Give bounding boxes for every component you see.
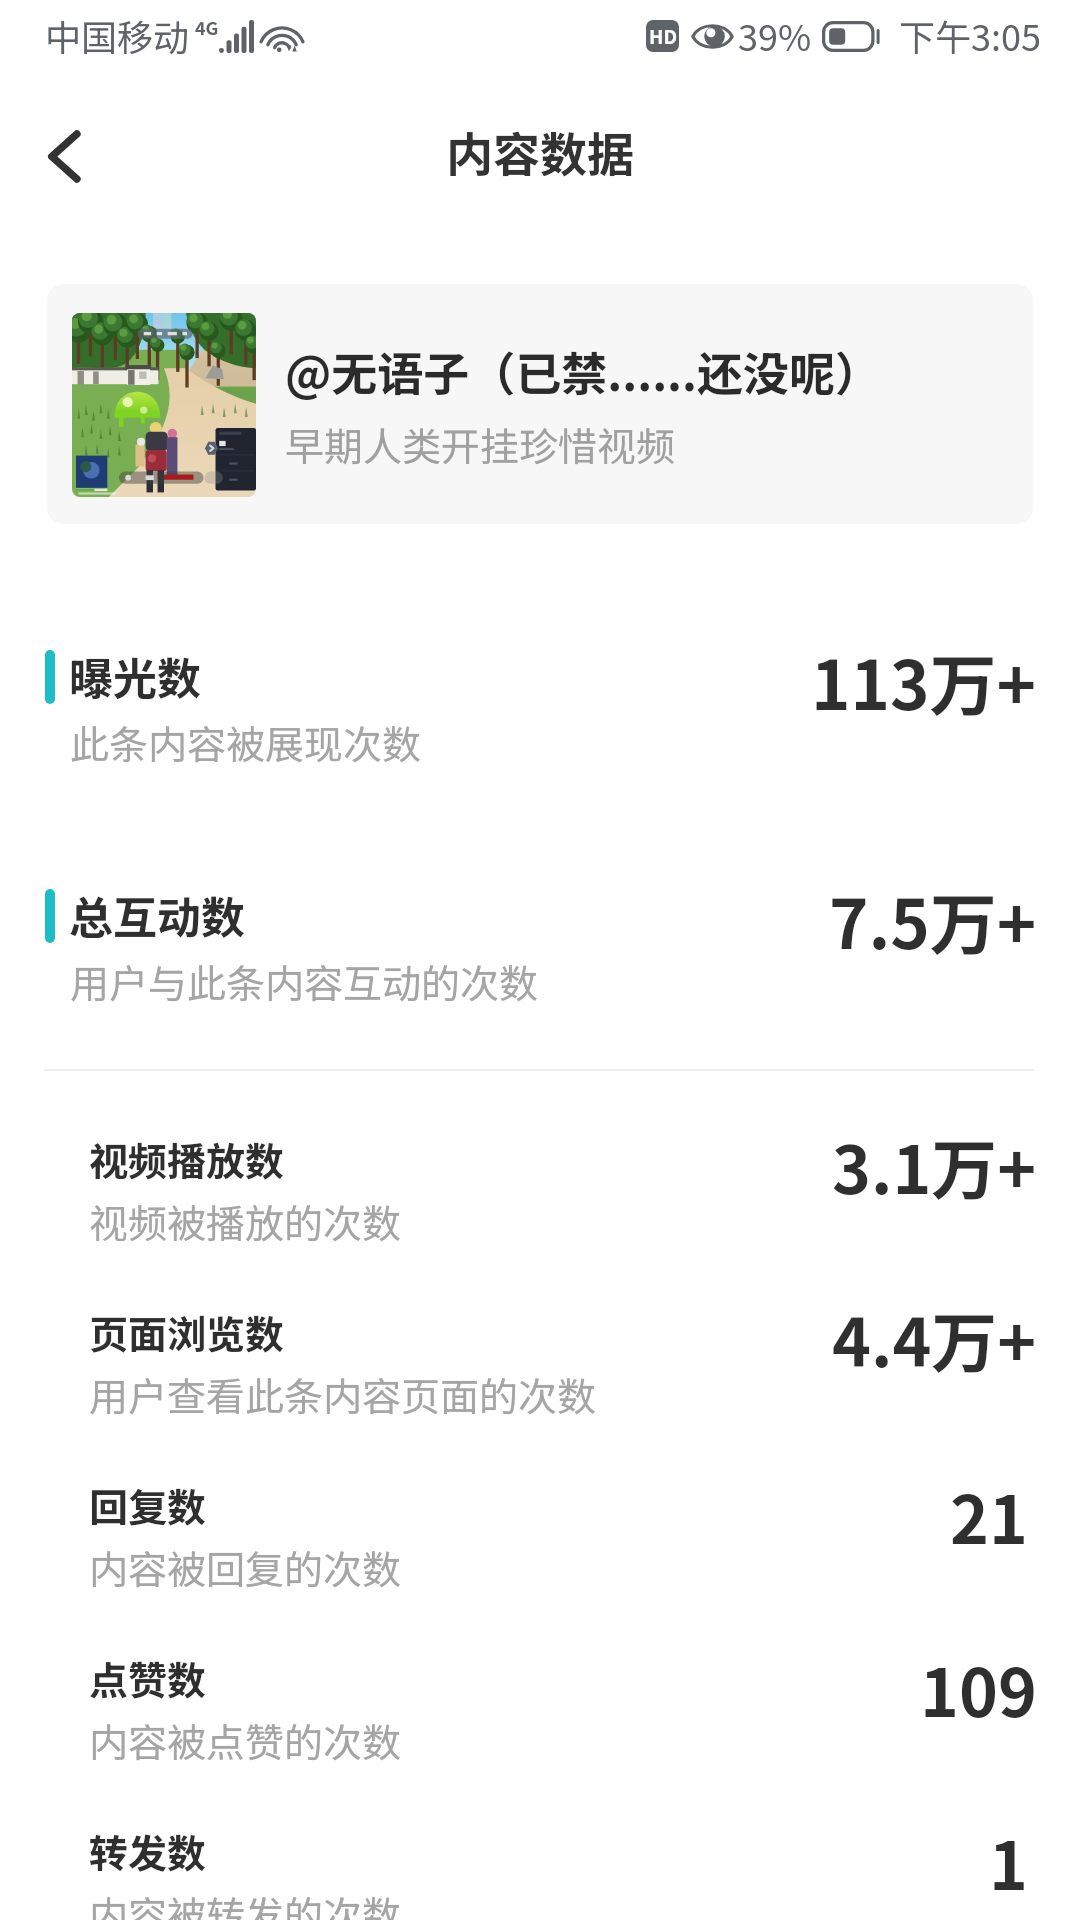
staticText: 早期人类开挂珍惜视频 — [285, 416, 676, 472]
staticText: 内容被点赞的次数 — [89, 1712, 402, 1768]
button[interactable]: 视频播放数 — [0, 1106, 1080, 1279]
staticText: 中国移动 — [45, 9, 190, 61]
staticText: 转发数 — [89, 1823, 207, 1879]
staticText: 39% — [738, 9, 812, 61]
button[interactable]: 总互动数 — [0, 845, 1080, 1050]
staticText: 用户与此条内容互动的次数 — [70, 953, 539, 1009]
staticText: 曝光数 — [69, 644, 201, 708]
staticText: 21 — [950, 1467, 1028, 1563]
staticText: 下午3:05 — [899, 9, 1041, 61]
staticText: 4.4万+ — [832, 1290, 1037, 1386]
staticText: 1 — [989, 1813, 1028, 1909]
staticText: 109 — [920, 1640, 1037, 1736]
button[interactable]: 页面浏览数 — [0, 1279, 1080, 1452]
button[interactable]: 回复数 — [0, 1452, 1080, 1625]
button[interactable]: @无语子（已禁......还没呢） — [47, 284, 1033, 524]
staticText: 7.5万+ — [829, 871, 1037, 968]
staticText: 总互动数 — [69, 883, 245, 947]
button[interactable]: 点赞数 — [0, 1625, 1080, 1798]
staticText: 页面浏览数 — [89, 1304, 285, 1360]
staticText: 113万+ — [811, 632, 1037, 729]
button[interactable]: 曝光数 — [0, 606, 1080, 811]
staticText: 视频被播放的次数 — [89, 1193, 402, 1249]
staticText: 内容数据 — [446, 117, 634, 185]
staticText: 内容被转发的次数 — [89, 1885, 402, 1920]
staticText: 点赞数 — [89, 1650, 207, 1706]
staticText: 用户查看此条内容页面的次数 — [89, 1366, 597, 1422]
staticText: 回复数 — [89, 1477, 207, 1533]
staticText: 4G — [195, 14, 219, 40]
button[interactable]: 转发数 — [0, 1798, 1080, 1920]
staticText: 3.1万+ — [832, 1117, 1037, 1213]
staticText: 此条内容被展现次数 — [70, 714, 422, 770]
staticText: 视频播放数 — [89, 1131, 285, 1187]
staticText: @无语子（已禁......还没呢） — [285, 338, 882, 405]
staticText: HD — [649, 22, 677, 50]
button[interactable]: Back — [20, 112, 108, 200]
staticText: 内容被回复的次数 — [89, 1539, 402, 1595]
